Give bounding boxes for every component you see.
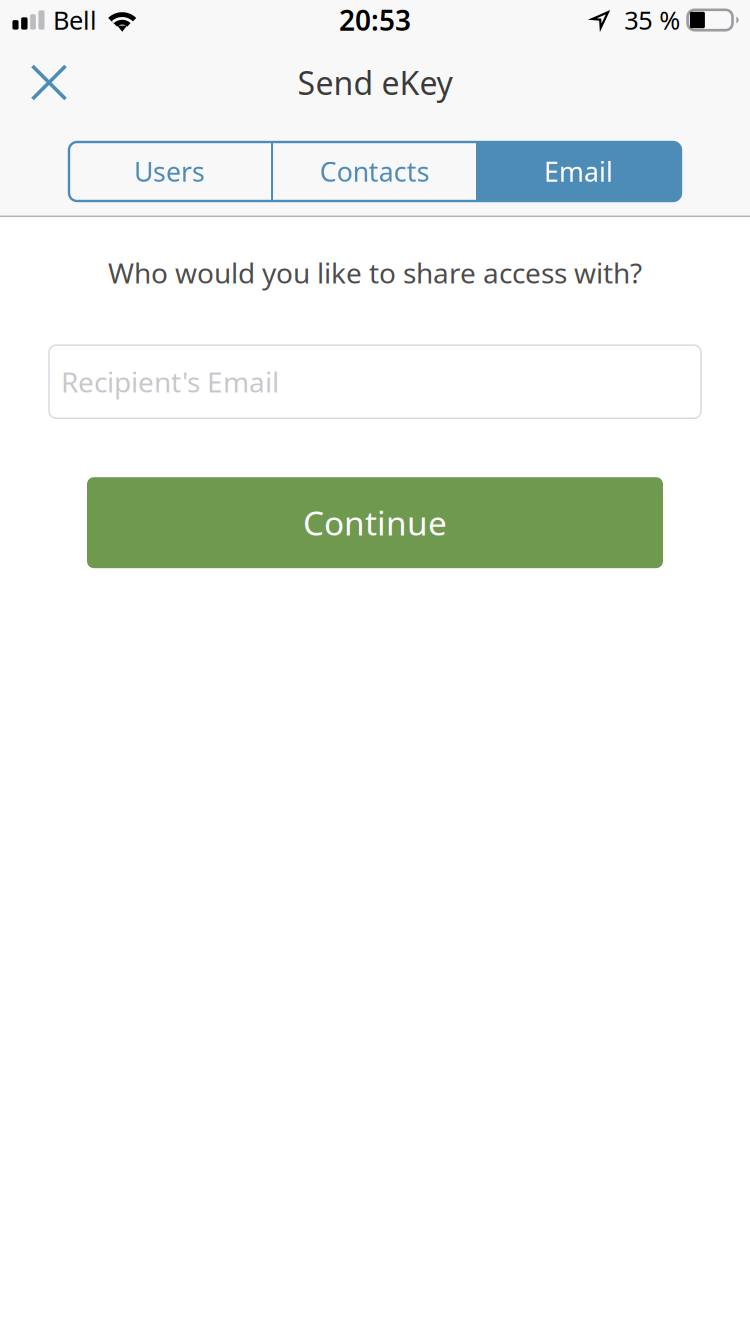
button[interactable]: Recipient's Email bbox=[49, 345, 701, 418]
button[interactable]: Close bbox=[0, 54, 98, 110]
staticText: 35 % bbox=[624, 3, 680, 37]
button[interactable]: Users bbox=[69, 142, 270, 201]
staticText: 20:53 bbox=[339, 1, 411, 39]
staticText: Contacts bbox=[320, 154, 430, 189]
staticText: Continue bbox=[303, 501, 447, 545]
staticText: Bell bbox=[53, 3, 97, 37]
button[interactable]: Email bbox=[476, 142, 681, 201]
staticText: Who would you like to share access with? bbox=[108, 254, 642, 291]
staticText: Recipient's Email bbox=[61, 363, 279, 400]
staticText: Send eKey bbox=[297, 61, 452, 104]
staticText: Email bbox=[544, 154, 613, 189]
staticText: Users bbox=[134, 154, 205, 189]
button[interactable]: Continue bbox=[87, 477, 663, 568]
button[interactable]: Contacts bbox=[274, 142, 475, 201]
